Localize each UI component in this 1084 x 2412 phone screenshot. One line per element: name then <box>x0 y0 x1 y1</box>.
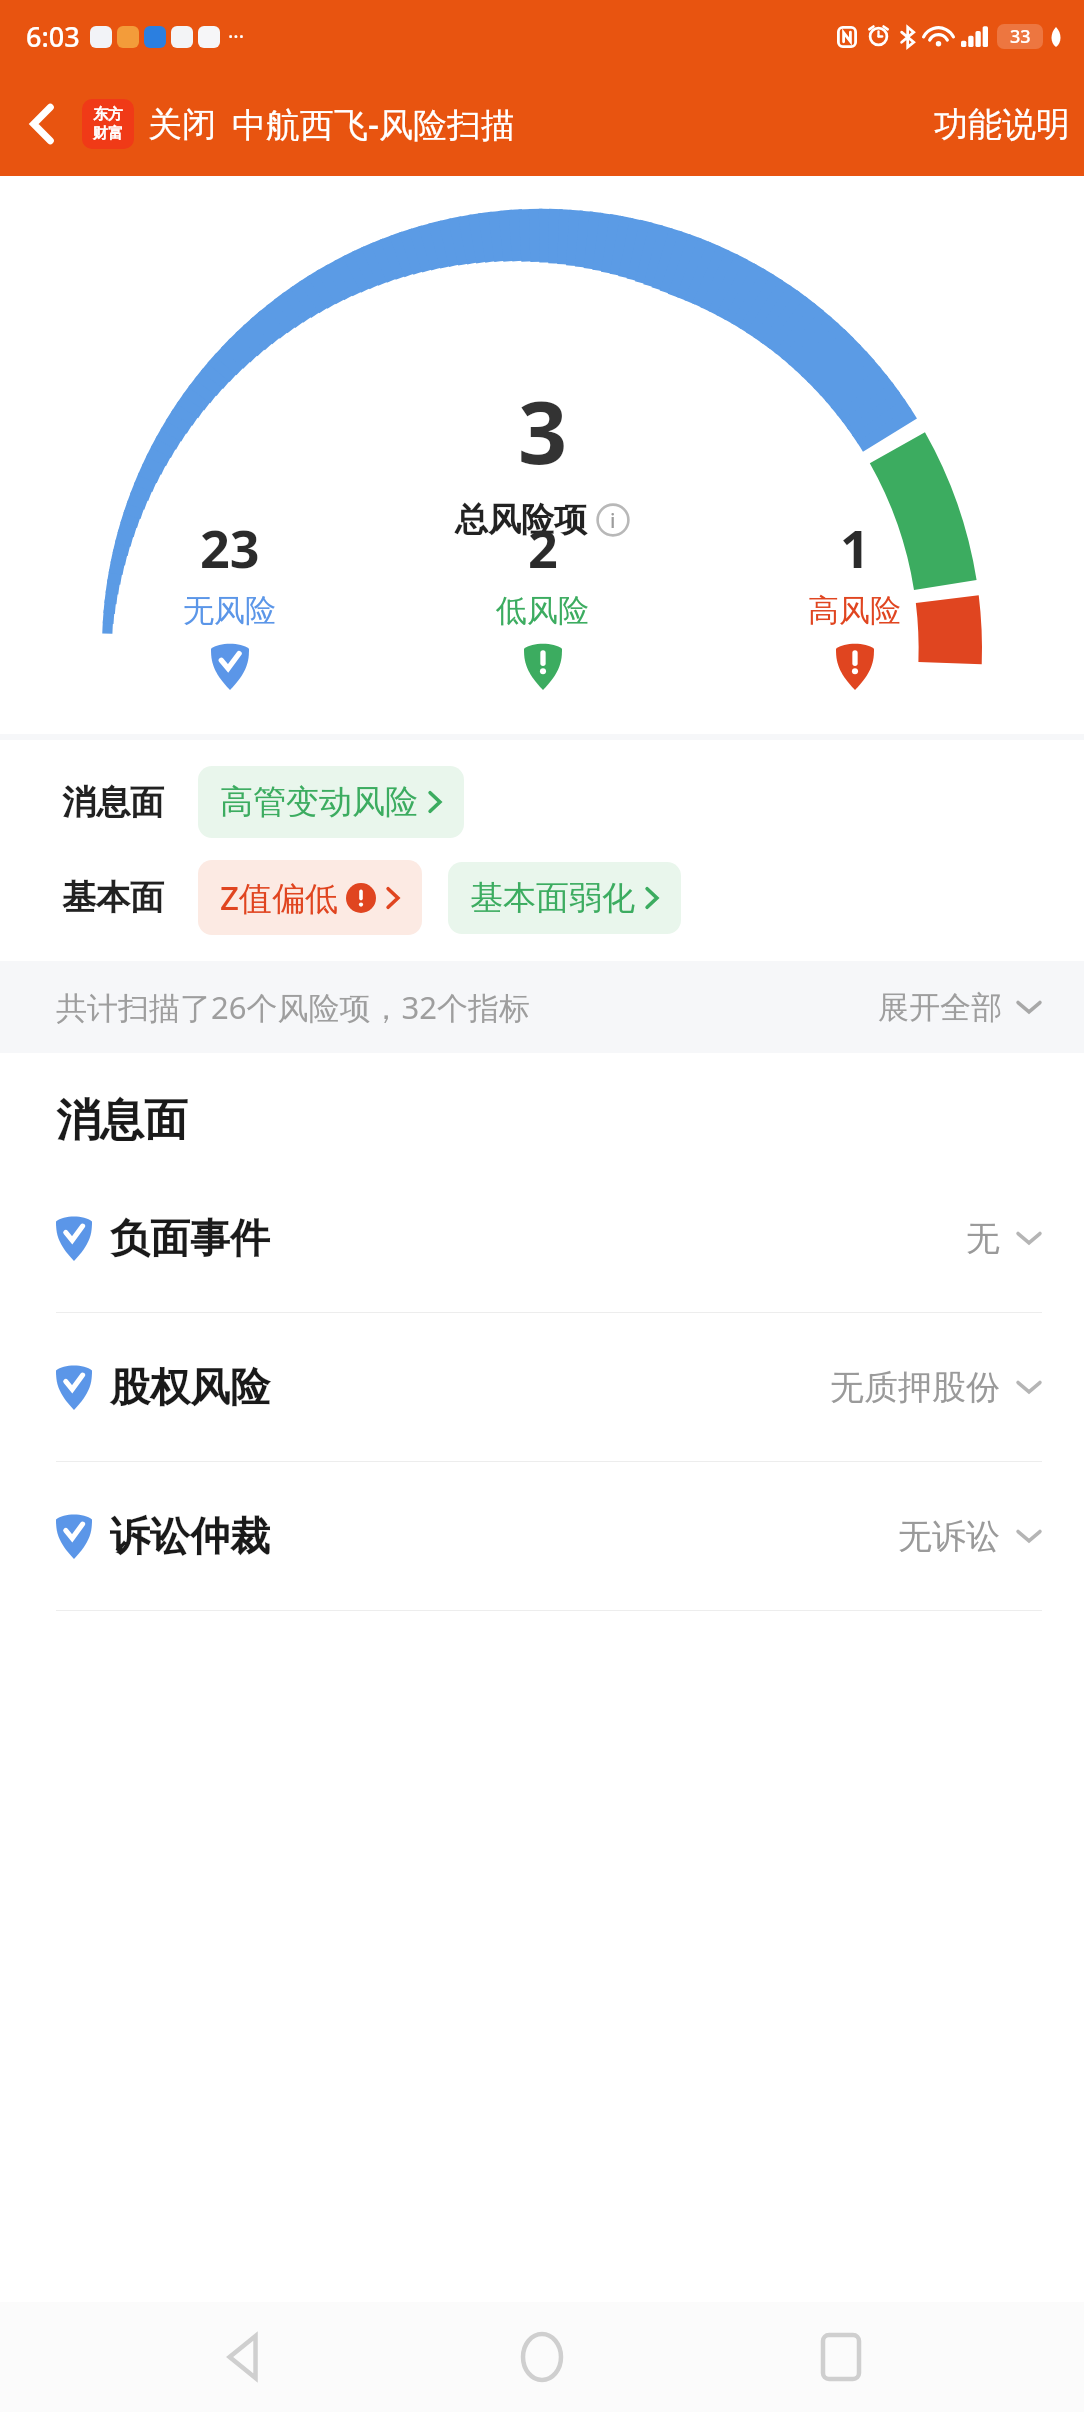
button[interactable]: 说明 <box>596 503 630 537</box>
staticText: 1 <box>840 512 870 583</box>
button[interactable]: 负面事件 <box>0 1164 1084 1313</box>
button[interactable]: 1 <box>772 508 937 694</box>
staticText: 基本面 <box>62 876 164 919</box>
staticText: 高管变动风险 <box>220 781 418 823</box>
button[interactable]: 功能说明 <box>934 103 1070 146</box>
button[interactable]: 返回 <box>189 2302 299 2412</box>
button[interactable]: 23 <box>147 508 312 694</box>
staticText: 23 <box>200 512 260 583</box>
staticText: 3 <box>518 372 568 489</box>
staticText: 基本面弱化 <box>470 877 635 919</box>
staticText: Z值偏低 <box>220 875 338 920</box>
button[interactable]: 2 <box>460 508 625 694</box>
button[interactable]: 诉讼仲裁 <box>0 1462 1084 1611</box>
staticText: 关闭 <box>148 103 216 146</box>
button[interactable]: 最近任务 <box>786 2302 896 2412</box>
staticText: 负面事件 <box>110 1213 270 1263</box>
staticText: 诉讼仲裁 <box>110 1511 270 1561</box>
staticText: 功能说明 <box>934 103 1070 146</box>
button[interactable]: 共计扫描了26个风险项，32个指标 <box>0 961 1084 1053</box>
button[interactable]: 高管变动风险 <box>198 766 464 838</box>
button[interactable]: 主屏幕 <box>487 2302 597 2412</box>
button[interactable]: 关闭 <box>148 103 216 146</box>
staticText: 无风险 <box>183 591 276 630</box>
staticText: 中航西飞-风险扫描 <box>232 101 515 147</box>
staticText: 2 <box>528 512 558 583</box>
staticText: 财富 <box>93 124 123 143</box>
staticText: 消息面 <box>62 781 164 824</box>
button[interactable]: 股权风险 <box>0 1313 1084 1462</box>
staticText: 总风险项 <box>455 499 587 541</box>
staticText: i <box>610 507 616 534</box>
staticText: 展开全部 <box>878 988 1002 1027</box>
staticText: 高风险 <box>808 591 901 630</box>
button[interactable]: Z值偏低 <box>198 860 422 935</box>
staticText: ··· <box>228 23 245 50</box>
staticText: 无 <box>966 1217 1000 1260</box>
button[interactable]: 东方财富 <box>82 99 134 149</box>
button[interactable]: 基本面弱化 <box>448 862 681 934</box>
staticText: 低风险 <box>496 591 589 630</box>
staticText: 无诉讼 <box>898 1515 1000 1558</box>
staticText: 33 <box>1010 24 1031 49</box>
staticText: 消息面 <box>56 1093 188 1148</box>
button[interactable]: 返回 <box>14 96 70 152</box>
staticText: 6:03 <box>26 18 80 55</box>
staticText: 无质押股份 <box>830 1366 1000 1409</box>
staticText: 共计扫描了26个风险项，32个指标 <box>56 986 530 1028</box>
staticText: 东方 <box>93 105 123 124</box>
staticText: 股权风险 <box>110 1362 270 1412</box>
